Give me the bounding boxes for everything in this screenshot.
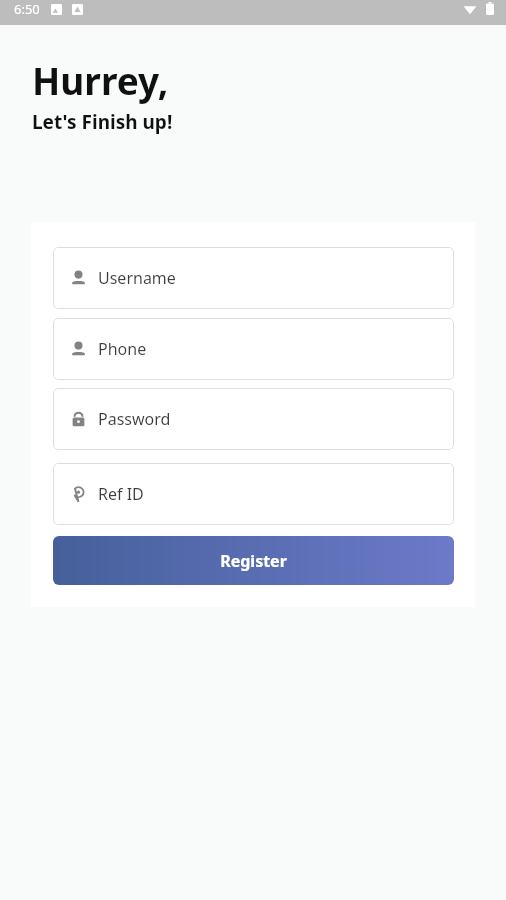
button[interactable]: Ref ID [53, 463, 454, 525]
button[interactable]: Password [53, 388, 454, 450]
staticText: Let's Finish up! [32, 109, 173, 135]
staticText: Username [98, 267, 176, 289]
staticText: Password [98, 408, 171, 430]
staticText: Phone [98, 338, 147, 360]
button[interactable]: Phone [53, 318, 454, 380]
staticText: Register [220, 550, 287, 572]
staticText: 6:50 [14, 0, 40, 18]
staticText: Hurrey, [32, 55, 169, 105]
staticText: Ref ID [98, 483, 144, 505]
button[interactable]: Register [53, 536, 454, 585]
button[interactable]: Username [53, 247, 454, 309]
